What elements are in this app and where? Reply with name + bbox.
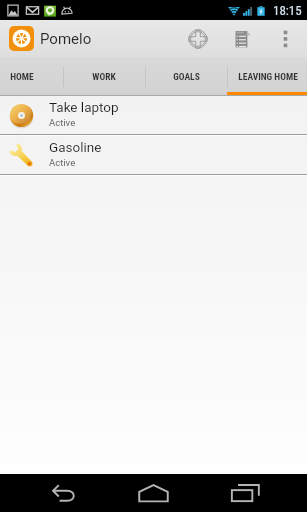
staticText: Active <box>49 117 76 128</box>
staticText: Take laptop <box>49 99 119 115</box>
button[interactable]: GOALS <box>145 57 227 96</box>
button[interactable]: Take laptop <box>0 96 307 134</box>
staticText: 18:15 <box>273 3 302 18</box>
staticText: Gasoline <box>49 139 102 155</box>
staticText: Active <box>49 157 76 168</box>
button[interactable]: WORK <box>63 57 145 96</box>
button[interactable]: Add <box>175 20 220 57</box>
button[interactable]: HOME <box>0 57 63 96</box>
staticText: Pomelo <box>40 30 92 48</box>
staticText: HOME <box>10 71 34 82</box>
staticText: LEAVING HOME <box>238 71 298 82</box>
button[interactable]: App icon <box>9 26 34 51</box>
button[interactable]: Recent apps <box>209 474 282 512</box>
button[interactable]: LEAVING HOME <box>227 57 307 96</box>
staticText: WORK <box>92 71 116 82</box>
button[interactable]: Documents <box>220 20 264 57</box>
staticText: GOALS <box>173 71 200 82</box>
button[interactable]: Gasoline <box>0 136 307 174</box>
button[interactable]: Back <box>27 474 100 512</box>
button[interactable]: Home <box>117 474 190 512</box>
button[interactable]: More options <box>264 20 306 57</box>
